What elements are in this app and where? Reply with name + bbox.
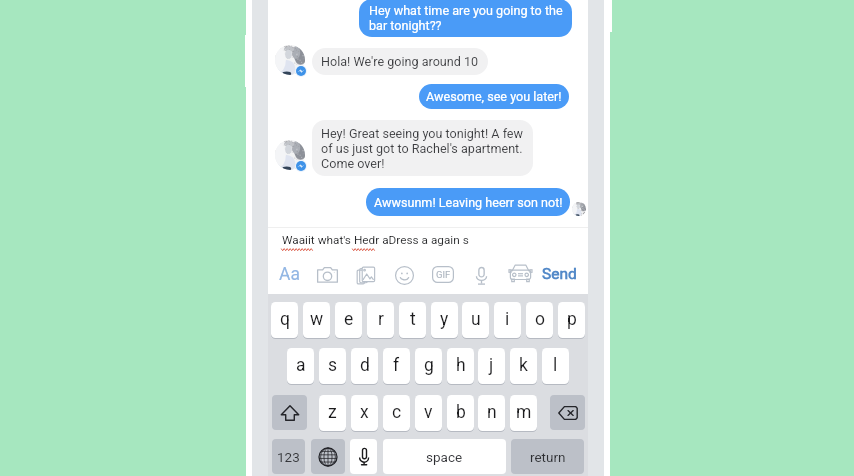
staticText: Send xyxy=(542,265,577,283)
staticText: v xyxy=(424,402,433,423)
button[interactable]: o xyxy=(526,302,553,338)
button[interactable]: r xyxy=(367,302,394,338)
staticText: w xyxy=(310,309,324,330)
staticText: m xyxy=(516,402,532,423)
staticText: i xyxy=(505,309,510,330)
button[interactable]: Shift xyxy=(272,395,307,430)
staticText: GIF xyxy=(436,269,451,280)
staticText: o xyxy=(535,309,545,330)
button[interactable]: m xyxy=(510,395,537,431)
button[interactable]: v xyxy=(415,395,442,431)
button[interactable]: GIF xyxy=(432,266,454,283)
button[interactable]: f xyxy=(383,348,410,384)
staticText: t xyxy=(410,309,416,330)
staticText: s xyxy=(328,355,338,376)
button[interactable]: Camera xyxy=(317,267,338,283)
button[interactable]: x xyxy=(351,395,378,431)
button[interactable]: d xyxy=(351,348,378,384)
button[interactable]: Voice message xyxy=(476,267,487,285)
staticText: e xyxy=(344,309,354,330)
staticText: g xyxy=(424,355,434,376)
button[interactable]: Photos xyxy=(357,266,375,285)
staticText: Hey! Great seeing you tonight! A few of … xyxy=(321,126,524,171)
staticText: q xyxy=(280,309,290,330)
button[interactable]: Backspace xyxy=(550,395,585,430)
button[interactable]: h xyxy=(447,348,474,384)
staticText: 123 xyxy=(277,449,300,465)
staticText: b xyxy=(456,402,466,423)
button[interactable]: Send xyxy=(542,265,577,283)
staticText: l xyxy=(553,355,558,376)
staticText: r xyxy=(378,309,384,330)
staticText: d xyxy=(360,355,370,376)
staticText: Hola! We're going around 10 xyxy=(321,54,479,69)
button[interactable]: l xyxy=(542,348,569,384)
button[interactable]: q xyxy=(271,302,298,338)
staticText: x xyxy=(360,402,369,423)
button[interactable]: j xyxy=(478,348,505,384)
button[interactable]: Awwsunm! Leaving heerr son not! xyxy=(366,188,570,216)
button[interactable]: z xyxy=(319,395,346,431)
button[interactable] xyxy=(268,228,588,254)
staticText: Awesome, see you later! xyxy=(426,89,562,104)
button[interactable]: w xyxy=(303,302,330,338)
staticText: Awwsunm! Leaving heerr son not! xyxy=(374,195,563,210)
button[interactable]: Stickers xyxy=(395,266,414,285)
button[interactable]: Hey! Great seeing you tonight! A few of … xyxy=(312,120,533,176)
staticText: n xyxy=(487,402,497,423)
button[interactable]: Hey what time are you going to the bar t… xyxy=(359,0,572,37)
staticText: return xyxy=(530,449,566,465)
staticText: h xyxy=(456,355,466,376)
button[interactable]: Ride xyxy=(509,264,532,282)
button[interactable]: p xyxy=(558,302,585,338)
button[interactable]: space xyxy=(383,439,506,474)
button[interactable]: Language xyxy=(311,439,345,474)
button[interactable]: Aa xyxy=(277,263,301,285)
button[interactable]: s xyxy=(319,348,346,384)
button[interactable]: a xyxy=(287,348,314,384)
button[interactable]: return xyxy=(511,439,584,474)
button[interactable]: u xyxy=(462,302,489,338)
staticText: k xyxy=(519,355,528,376)
button[interactable]: Dictate xyxy=(350,439,377,474)
staticText: z xyxy=(328,402,337,423)
button[interactable]: n xyxy=(478,395,505,431)
button[interactable]: Hola! We're going around 10 xyxy=(312,48,488,75)
button[interactable]: c xyxy=(383,395,410,431)
staticText: c xyxy=(392,402,402,423)
staticText: Hey what time are you going to the bar t… xyxy=(369,3,563,33)
button[interactable]: b xyxy=(447,395,474,431)
button[interactable]: g xyxy=(415,348,442,384)
staticText: p xyxy=(567,309,577,330)
button[interactable]: y xyxy=(431,302,458,338)
button[interactable]: e xyxy=(335,302,362,338)
staticText: a xyxy=(296,355,306,376)
staticText: Aa xyxy=(279,264,300,285)
button[interactable]: 123 xyxy=(272,439,305,474)
button[interactable]: k xyxy=(510,348,537,384)
button[interactable]: t xyxy=(399,302,426,338)
staticText: Waaiit what's Hedr aDress a again s xyxy=(282,233,469,247)
staticText: y xyxy=(440,309,449,330)
button[interactable]: Awesome, see you later! xyxy=(419,84,569,109)
button[interactable]: i xyxy=(494,302,521,338)
staticText: j xyxy=(489,355,494,376)
staticText: space xyxy=(426,449,463,465)
staticText: f xyxy=(393,355,400,376)
staticText: u xyxy=(471,309,481,330)
